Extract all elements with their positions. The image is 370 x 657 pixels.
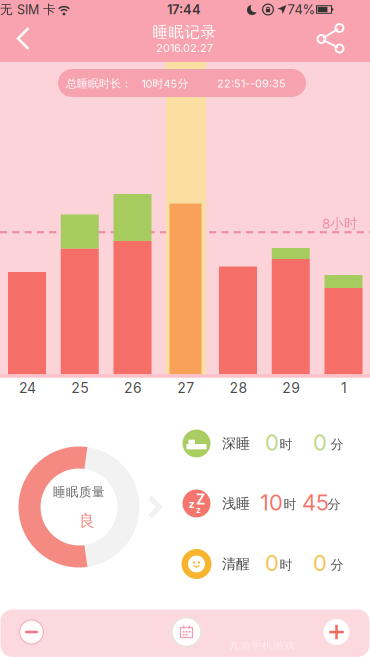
staticText: z: [188, 497, 194, 511]
staticText: 2016.02.27: [156, 41, 213, 55]
staticText: z: [196, 505, 201, 515]
staticText: 17:44: [167, 2, 201, 17]
staticText: 时: [279, 557, 292, 573]
staticText: 8小时: [322, 215, 358, 232]
staticText: Z: [196, 491, 205, 508]
button[interactable]: Share: [311, 17, 351, 57]
staticText: 10: [260, 489, 283, 516]
staticText: 分: [330, 436, 343, 453]
staticText: 深睡: [222, 435, 250, 452]
staticText: 睡眠记录: [152, 22, 216, 42]
staticText: 时: [283, 496, 296, 513]
staticText: 74%: [287, 2, 315, 17]
staticText: 0: [265, 429, 279, 456]
staticText: 分: [327, 496, 340, 513]
button[interactable]: Back: [2, 18, 46, 60]
staticText: 清醒: [222, 555, 250, 573]
staticText: 浅睡: [222, 495, 250, 512]
staticText: 时: [279, 436, 292, 453]
button[interactable]: 睡眠质量 良: [0, 0, 370, 657]
staticText: 0: [265, 550, 279, 576]
staticText: 45: [302, 489, 329, 516]
staticText: 良: [79, 511, 95, 531]
staticText: 22:51--09:35: [217, 77, 286, 90]
staticText: 总睡眠时长：: [66, 77, 132, 90]
staticText: 10时45分: [141, 77, 188, 90]
staticText: 分: [330, 557, 343, 573]
staticText: 27: [177, 379, 194, 396]
button[interactable]: Zoom out: [19, 619, 44, 644]
staticText: 0: [313, 429, 327, 456]
staticText: 0: [313, 550, 327, 576]
staticText: 睡眠质量: [53, 484, 105, 500]
staticText: 29: [282, 379, 300, 396]
staticText: 25: [71, 379, 89, 396]
staticText: 九游手机游戏: [229, 639, 295, 652]
staticText: 26: [124, 379, 142, 396]
staticText: 1: [341, 379, 347, 396]
staticText: 无 SIM 卡: [0, 2, 56, 17]
staticText: 28: [229, 379, 247, 396]
staticText: 24: [19, 379, 36, 396]
button[interactable]: Calendar: [171, 617, 201, 647]
button[interactable]: Zoom in: [323, 619, 349, 645]
